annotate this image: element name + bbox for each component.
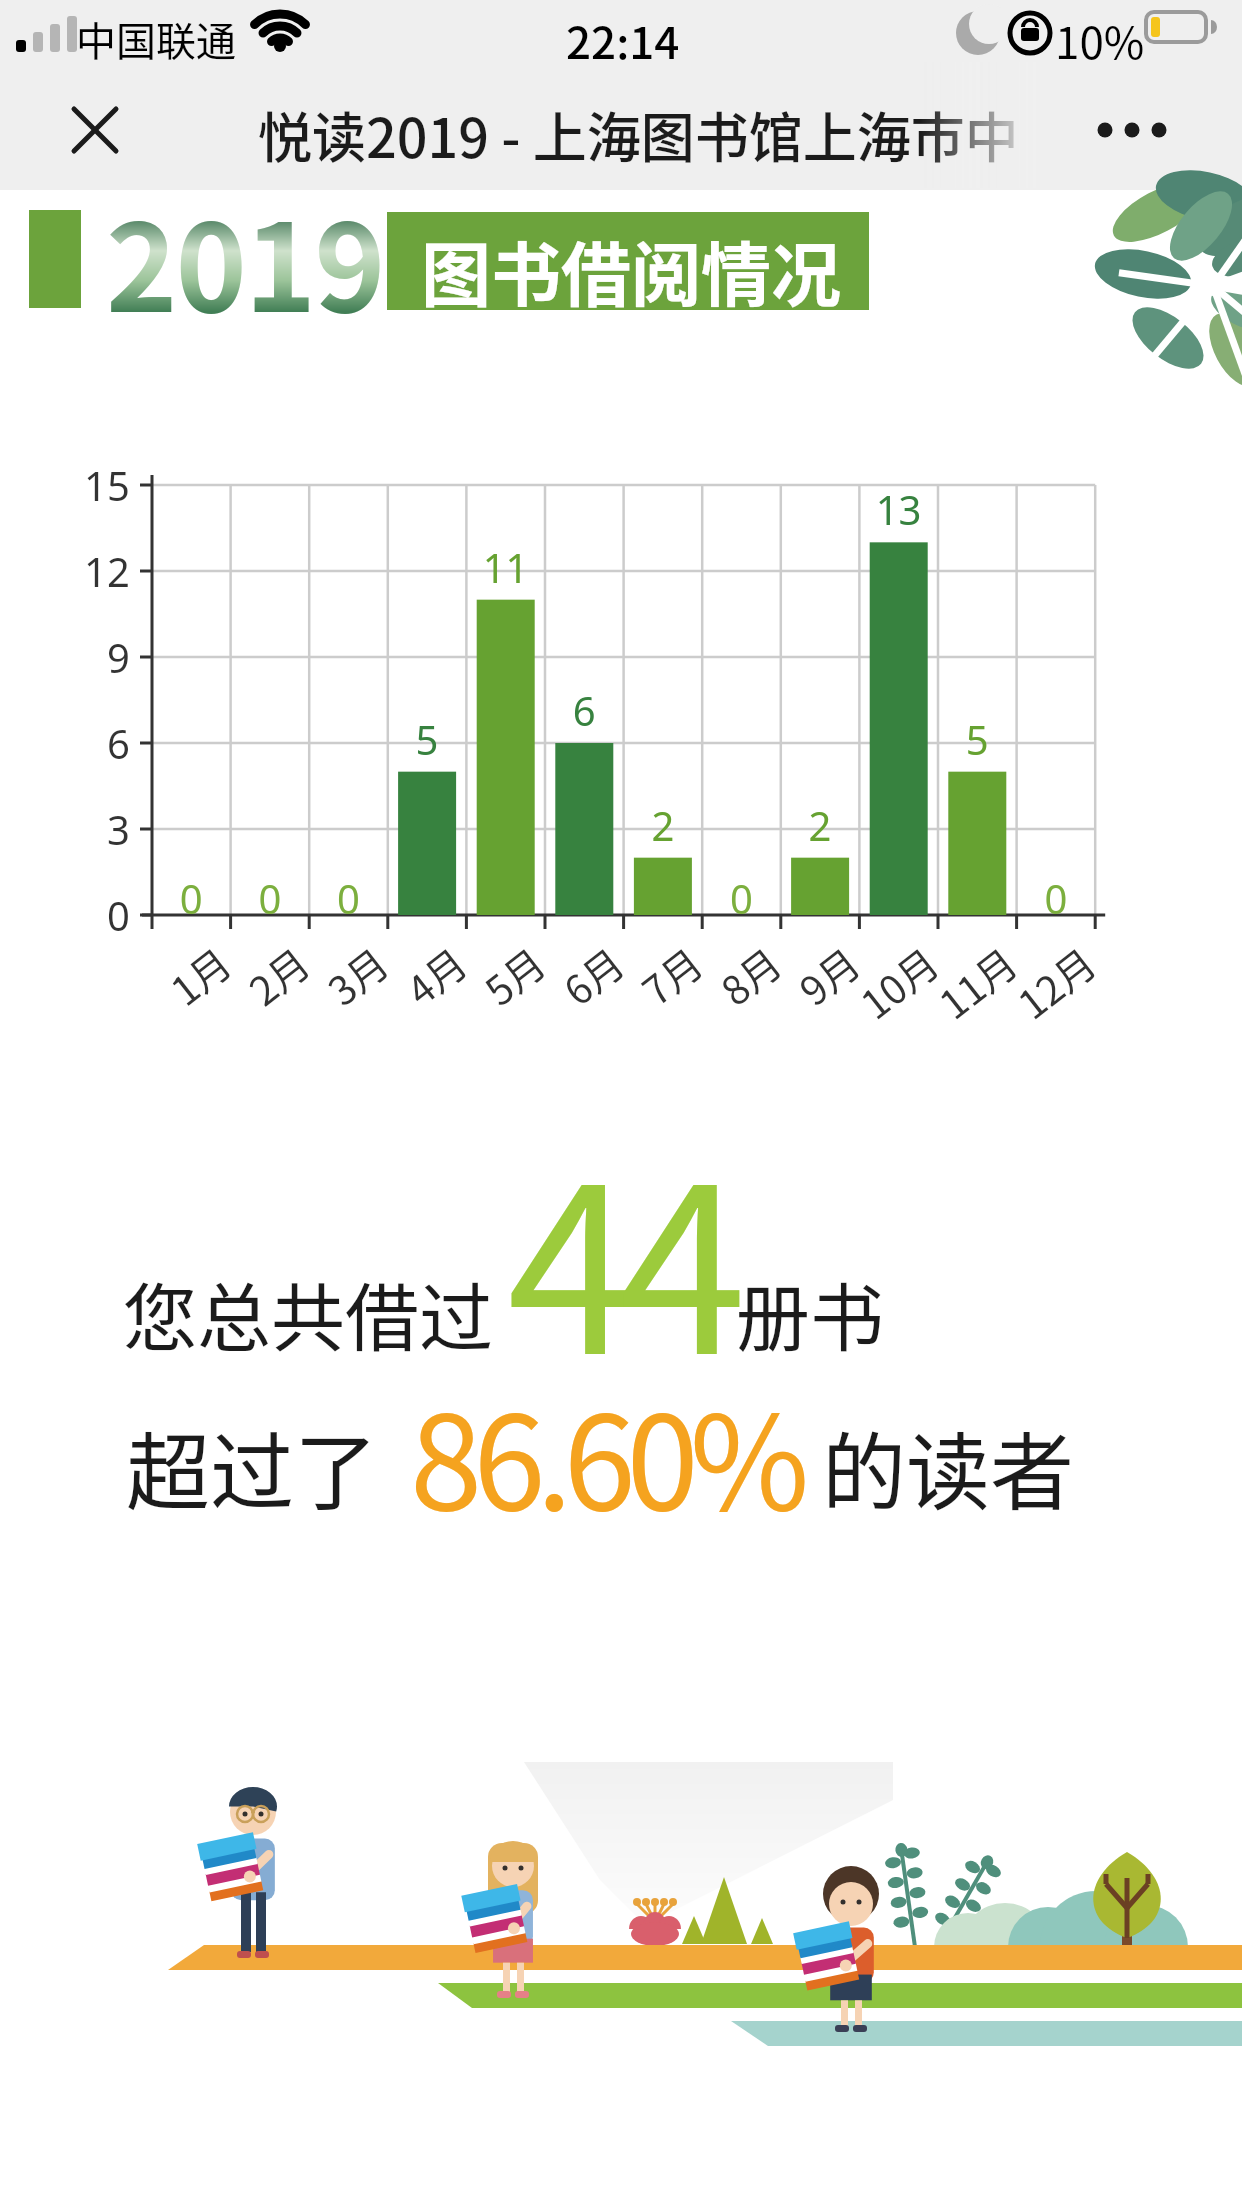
- staticText: 44: [507, 1087, 731, 1420]
- staticText: 22:14: [566, 8, 680, 72]
- staticText: 册书: [736, 1259, 884, 1366]
- staticText: 您总共借过: [123, 1259, 493, 1366]
- staticText: 图书借阅情况: [421, 220, 841, 318]
- staticText: 2019: [106, 172, 384, 347]
- staticText: 中国联通: [76, 10, 236, 68]
- staticText: 超过了: [126, 1406, 379, 1528]
- button[interactable]: [1085, 95, 1195, 165]
- staticText: 10%: [1055, 8, 1145, 72]
- staticText: 的读者: [822, 1406, 1075, 1528]
- button[interactable]: [60, 95, 130, 165]
- staticText: 悦读2019 - 上海图书馆上海市中: [258, 95, 1019, 173]
- staticText: 86.60%: [410, 1359, 801, 1547]
